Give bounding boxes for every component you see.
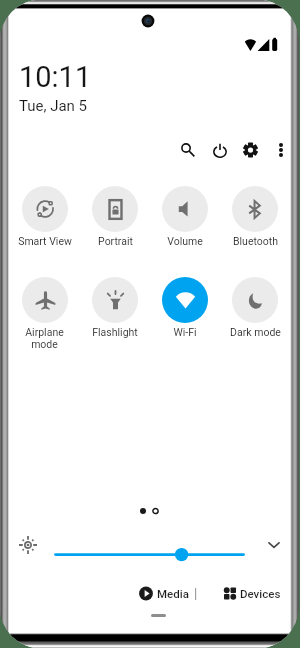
button[interactable]: More options: [270, 139, 290, 161]
button[interactable]: Wi-Fi: [150, 277, 220, 338]
button[interactable]: Page indicator: [134, 502, 166, 518]
staticText: Dark mode: [230, 326, 281, 338]
button[interactable]: Search: [177, 139, 199, 161]
button[interactable]: Dark mode: [220, 277, 290, 338]
button[interactable]: Flashlight: [80, 277, 150, 338]
button[interactable]: Media: [139, 581, 197, 606]
button[interactable]: Power: [209, 139, 231, 162]
staticText: Bluetooth: [233, 235, 278, 247]
staticText: Smart View: [18, 235, 72, 247]
staticText: Airplane mode: [25, 326, 64, 350]
button[interactable]: Expand brightness: [262, 533, 286, 557]
staticText: Tue, Jan 5: [19, 97, 88, 115]
staticText: Wi-Fi: [173, 326, 197, 338]
button[interactable]: Airplane mode: [9, 277, 80, 350]
staticText: Portrait: [98, 235, 133, 247]
staticText: 10:11: [19, 60, 92, 94]
button[interactable]: Devices: [224, 581, 281, 606]
button[interactable]: Bluetooth: [220, 186, 290, 247]
button[interactable]: Portrait: [80, 186, 150, 247]
button[interactable]: Brightness slider: [49, 541, 261, 567]
button[interactable]: Brightness: [16, 533, 40, 557]
staticText: Flashlight: [92, 326, 138, 338]
button[interactable]: Settings: [239, 139, 262, 161]
staticText: Media: [157, 587, 189, 600]
button[interactable]: Volume: [150, 186, 220, 247]
button[interactable]: Smart View: [9, 186, 80, 247]
staticText: Volume: [167, 235, 203, 247]
button[interactable]: Collapse panel: [135, 604, 181, 624]
staticText: Devices: [240, 587, 281, 600]
